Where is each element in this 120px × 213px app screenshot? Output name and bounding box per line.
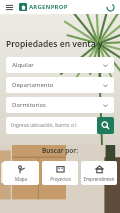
staticText: Proyectos	[50, 176, 71, 182]
staticText: Buscar por:	[0, 146, 120, 155]
button[interactable]: Proyectos	[42, 161, 78, 185]
staticText: Ingresá ubicación, barrio o l	[11, 122, 77, 129]
button[interactable]: ARGENPROP	[19, 3, 68, 11]
staticText: Departamento	[12, 81, 54, 89]
staticText: Propiedades en venta y alquiler	[6, 38, 120, 50]
staticText: Alquilar	[12, 61, 34, 69]
button[interactable]: Dormitorios	[6, 97, 114, 113]
button[interactable]: Buscar	[97, 117, 114, 134]
button[interactable]: Menú	[4, 2, 14, 12]
button[interactable]: Mi cuenta	[105, 2, 116, 13]
staticText: Dormitorios	[12, 101, 46, 109]
button[interactable]: Alquilar	[6, 57, 114, 73]
staticText: Mapa	[15, 176, 27, 182]
button[interactable]: Ingresá ubicación, barrio o l	[6, 117, 97, 134]
staticText: ARGENPROP	[29, 3, 68, 11]
button[interactable]: Departamento	[6, 77, 114, 93]
button[interactable]: Mapa	[3, 161, 39, 185]
staticText: Emprendimientos	[83, 176, 115, 182]
button[interactable]: Emprendimientos	[81, 161, 117, 185]
